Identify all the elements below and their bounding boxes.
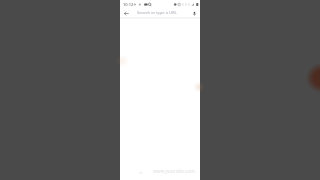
button[interactable]: Back — [122, 9, 130, 17]
staticText: www.yoursite.com — [153, 168, 195, 175]
button[interactable]: Voice search — [190, 9, 198, 17]
staticText: 10:12 — [123, 2, 134, 7]
staticText: Search or type a URL — [137, 10, 177, 16]
